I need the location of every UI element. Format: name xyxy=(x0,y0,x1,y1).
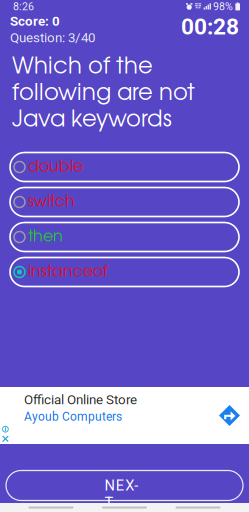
staticText: switch xyxy=(28,195,75,209)
button[interactable]: Advertisement: Official Online Store, Ay… xyxy=(0,387,249,444)
staticText: 00:28 xyxy=(181,13,239,40)
button[interactable]: NEXT xyxy=(6,470,243,500)
staticText: 98% xyxy=(213,0,233,13)
staticText: then xyxy=(28,230,63,244)
staticText: 8:26 xyxy=(13,0,34,13)
staticText: Java keywords xyxy=(12,110,172,131)
staticText: Question: 3/40 xyxy=(10,30,95,46)
staticText: instanceof xyxy=(28,265,108,279)
staticText: Official Online Store xyxy=(24,392,137,408)
button[interactable]: double xyxy=(10,152,239,181)
staticText: NEXT xyxy=(104,477,145,494)
staticText: double xyxy=(28,160,83,174)
staticText: Which of the xyxy=(12,57,153,78)
staticText: Score: 0 xyxy=(10,13,60,29)
staticText: following are not xyxy=(12,83,195,104)
button[interactable]: switch xyxy=(10,187,239,216)
button[interactable]: then xyxy=(10,222,239,251)
button[interactable]: instanceof xyxy=(10,257,239,286)
staticText: Ayoub Computers xyxy=(24,410,122,424)
